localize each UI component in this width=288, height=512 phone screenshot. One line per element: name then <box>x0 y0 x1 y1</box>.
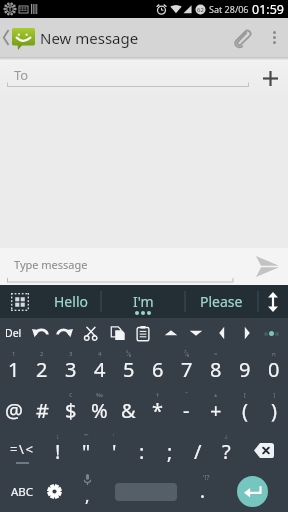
button[interactable]: I'm <box>101 285 185 318</box>
button[interactable]: Undo <box>28 318 52 348</box>
staticText: ' <box>112 438 117 465</box>
button[interactable]: Attach <box>224 18 260 57</box>
staticText: ; <box>167 438 173 465</box>
button[interactable]: Please <box>185 285 258 318</box>
button[interactable]: ¿ <box>212 430 240 471</box>
button[interactable]: Redo <box>53 318 77 348</box>
button[interactable]: Copy <box>106 318 130 348</box>
staticText: 7 <box>181 356 193 383</box>
staticText: =\< <box>10 440 35 458</box>
staticText: ABC <box>11 484 34 500</box>
button[interactable]: 6 <box>143 348 172 389</box>
staticText: '!? <box>203 473 210 483</box>
staticText: 8 <box>210 356 222 383</box>
staticText: [ <box>244 391 246 399</box>
staticText: 0 <box>268 356 280 383</box>
button[interactable]: 9 <box>230 348 259 389</box>
button[interactable]: # <box>28 389 56 430</box>
button[interactable]: Backspace <box>240 430 288 471</box>
staticText: Hello <box>54 292 88 311</box>
staticText: 1 <box>12 350 16 358</box>
button[interactable]: Move left <box>210 318 234 348</box>
staticText: : <box>139 438 145 465</box>
button[interactable]: ¡ <box>44 430 72 471</box>
button[interactable]: Add recipient <box>252 60 288 96</box>
button[interactable]: = <box>201 348 230 389</box>
staticText: ? <box>222 438 231 465</box>
staticText: = <box>214 350 218 358</box>
staticText: ¡ <box>57 432 59 440</box>
button[interactable]: Send <box>246 248 288 285</box>
button[interactable]: Del <box>0 318 27 348</box>
button[interactable]: '!? <box>188 471 216 512</box>
staticText: Type message <box>14 257 88 272</box>
button[interactable]: More options <box>260 18 288 57</box>
button[interactable]: Move up <box>159 318 183 348</box>
button[interactable]: “” <box>72 430 100 471</box>
staticText: ± <box>214 391 218 399</box>
staticText: ! <box>55 438 61 465</box>
button[interactable]: Paste <box>131 318 155 348</box>
button[interactable]: Move right <box>235 318 259 348</box>
staticText: ‘ <box>113 432 115 440</box>
button[interactable]: Input settings <box>44 471 64 512</box>
staticText: I'm <box>133 292 154 311</box>
button[interactable]: 2 <box>28 348 56 389</box>
button[interactable]: Back <box>0 18 40 57</box>
button[interactable]: / <box>184 430 212 471</box>
staticText: 01:59 <box>252 1 284 18</box>
button[interactable]: @ <box>0 389 28 430</box>
button[interactable]: =\< <box>0 430 44 471</box>
button[interactable]: Enter <box>216 471 288 512</box>
button[interactable]: ⁷⁄₈ <box>172 348 201 389</box>
button[interactable]: ± <box>201 389 230 430</box>
staticText: ¿ <box>225 432 228 440</box>
button[interactable]: ¢ <box>56 389 85 430</box>
staticText: 2 <box>36 356 48 383</box>
staticText: 4 <box>98 350 102 358</box>
staticText: ¯ <box>185 391 189 399</box>
button[interactable]: n <box>259 348 288 389</box>
button[interactable]: Voice input options <box>259 318 283 348</box>
button[interactable]: ‰ <box>85 389 114 430</box>
staticText: + <box>210 397 222 424</box>
button[interactable]: 4 <box>85 348 114 389</box>
staticText: & <box>121 397 136 424</box>
button[interactable]: Cut <box>78 318 102 348</box>
staticText: 62 <box>197 6 204 14</box>
staticText: To <box>14 66 29 84</box>
other: Back <box>3 30 9 45</box>
button[interactable]: ⁵⁄₈ <box>114 348 143 389</box>
button[interactable]: : <box>128 430 156 471</box>
button[interactable]: ¯ <box>172 389 201 430</box>
staticText: % <box>91 397 108 424</box>
button[interactable]: & <box>114 389 143 430</box>
button[interactable]: Space <box>104 471 188 512</box>
button[interactable]: Move down <box>184 318 208 348</box>
staticText: / <box>194 438 202 465</box>
button[interactable]: [ <box>230 389 259 430</box>
button[interactable]: ; <box>156 430 184 471</box>
staticText: ¢ <box>69 391 73 399</box>
button[interactable]: Keyboard layouts <box>0 285 40 318</box>
button[interactable]: † <box>143 389 172 430</box>
staticText: 3 <box>69 350 73 358</box>
staticText: 6 <box>152 356 164 383</box>
staticText: ‰ <box>96 391 104 399</box>
button[interactable]: Expand suggestions <box>258 285 288 318</box>
staticText: n <box>272 350 276 358</box>
staticText: 1 <box>8 356 20 383</box>
button[interactable]: Hello <box>40 285 101 318</box>
button[interactable]: , <box>71 471 104 512</box>
button[interactable]: ] <box>259 389 288 430</box>
staticText: ( <box>242 397 248 424</box>
staticText: ] <box>273 391 275 399</box>
staticText: 3 <box>65 356 77 383</box>
button[interactable]: ABC <box>0 471 44 512</box>
button[interactable]: 1 <box>0 348 28 389</box>
staticText: ⁵⁄₈ <box>126 350 131 358</box>
button[interactable]: ‘ <box>100 430 128 471</box>
button[interactable]: 3 <box>56 348 85 389</box>
staticText: ) <box>271 397 277 424</box>
staticText: Please <box>200 292 243 311</box>
